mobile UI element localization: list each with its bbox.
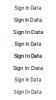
- staticText: Sign In Data: [14, 17, 42, 23]
- staticText: Sign In Data: [14, 77, 41, 83]
- staticText: Sign In Data: [13, 65, 43, 71]
- staticText: Sign In Data: [13, 28, 43, 35]
- staticText: Sign In Data: [14, 53, 42, 59]
- staticText: Sign In Data: [14, 41, 41, 47]
- staticText: Sign In Data: [14, 89, 42, 95]
- staticText: Sign In Data: [14, 5, 41, 11]
